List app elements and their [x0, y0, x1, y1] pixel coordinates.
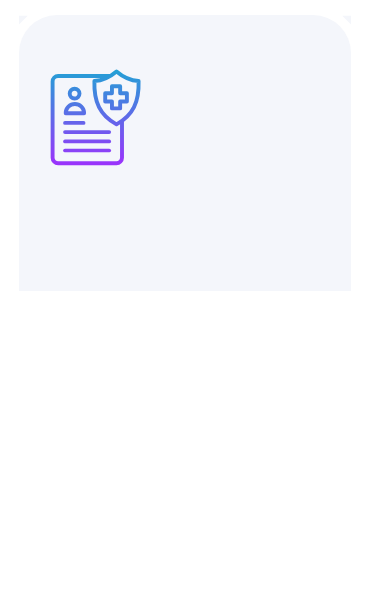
other: Medical record	[48, 66, 148, 168]
button[interactable]: Medical record	[19, 15, 351, 291]
